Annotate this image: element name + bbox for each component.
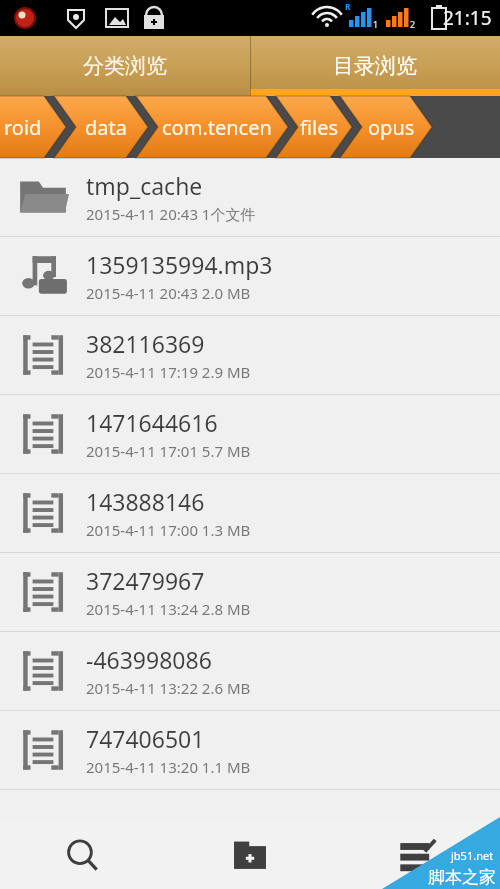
staticText: files bbox=[300, 114, 339, 141]
button[interactable]: opus bbox=[352, 96, 430, 158]
button[interactable]: 目录浏览 bbox=[250, 36, 500, 96]
staticText: 1 bbox=[373, 18, 379, 30]
button[interactable]: com.tencen bbox=[148, 96, 286, 158]
staticText: 2015-4-11 20:43 1个文件 bbox=[86, 204, 256, 224]
button[interactable]: New folder bbox=[166, 822, 333, 889]
staticText: 脚本之家 bbox=[428, 867, 496, 888]
button[interactable]: Select bbox=[333, 822, 500, 889]
staticText: 2015-4-11 20:43 2.0 MB bbox=[86, 283, 251, 303]
button[interactable]: files bbox=[288, 96, 350, 158]
staticText: 2 bbox=[410, 18, 416, 30]
staticText: 2015-4-11 17:00 1.3 MB bbox=[86, 520, 251, 540]
staticText: 2015-4-11 13:24 2.8 MB bbox=[86, 599, 251, 619]
staticText: 分类浏览 bbox=[83, 53, 167, 79]
button[interactable]: 143888146 bbox=[0, 474, 500, 552]
button[interactable]: 382116369 bbox=[0, 316, 500, 394]
staticText: data bbox=[85, 114, 127, 141]
button[interactable]: -463998086 bbox=[0, 632, 500, 710]
button[interactable]: tmp_cache bbox=[0, 158, 500, 236]
button[interactable]: 372479967 bbox=[0, 553, 500, 631]
staticText: 目录浏览 bbox=[333, 53, 417, 79]
staticText: 21:15 bbox=[443, 5, 492, 31]
staticText: roid bbox=[4, 114, 42, 141]
button[interactable]: Search bbox=[0, 822, 166, 889]
button[interactable]: 747406501 bbox=[0, 711, 500, 789]
button[interactable]: 分类浏览 bbox=[0, 36, 250, 96]
staticText: 747406501 bbox=[86, 723, 205, 754]
staticText: 2015-4-11 13:20 1.1 MB bbox=[86, 757, 251, 777]
staticText: 2015-4-11 17:19 2.9 MB bbox=[86, 362, 251, 382]
staticText: com.tencen bbox=[162, 114, 272, 141]
staticText: opus bbox=[368, 114, 415, 141]
staticText: 2015-4-11 13:22 2.6 MB bbox=[86, 678, 251, 698]
staticText: 1471644616 bbox=[86, 407, 218, 438]
button[interactable]: roid bbox=[0, 96, 64, 158]
button[interactable]: data bbox=[66, 96, 146, 158]
staticText: 1359135994.mp3 bbox=[86, 249, 273, 280]
staticText: tmp_cache bbox=[86, 170, 203, 201]
staticText: jb51.net bbox=[451, 848, 494, 863]
staticText: 143888146 bbox=[86, 486, 205, 517]
button[interactable]: 1359135994.mp3 bbox=[0, 237, 500, 315]
staticText: -463998086 bbox=[86, 644, 212, 675]
button[interactable]: 1471644616 bbox=[0, 395, 500, 473]
staticText: 382116369 bbox=[86, 328, 205, 359]
staticText: 372479967 bbox=[86, 565, 205, 596]
staticText: 2015-4-11 17:01 5.7 MB bbox=[86, 441, 251, 461]
staticText: R bbox=[345, 1, 351, 12]
